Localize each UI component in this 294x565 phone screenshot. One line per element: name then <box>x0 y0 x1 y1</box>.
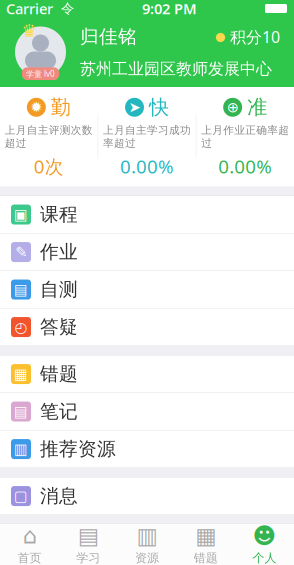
staticText: ▢ <box>14 488 28 504</box>
staticText: 积分10 <box>225 26 280 47</box>
staticText: 资源 <box>135 551 159 565</box>
staticText: 令 <box>61 0 74 17</box>
button[interactable]: ▤ <box>0 271 294 309</box>
staticText: 学习 <box>76 551 100 565</box>
staticText: 准 <box>247 95 267 120</box>
staticText: ▣ <box>14 206 28 223</box>
staticText: ☻ <box>253 523 277 548</box>
staticText: ✹ <box>30 99 42 116</box>
staticText: Carrier <box>6 0 53 18</box>
button[interactable]: ▥ <box>0 431 294 468</box>
staticText: 0.00% <box>218 154 272 179</box>
staticText: 上月自主评测次数超过 <box>5 124 93 150</box>
button[interactable]: ✎ <box>0 234 294 271</box>
staticText: ▤ <box>14 281 28 298</box>
staticText: 个人 <box>253 551 277 565</box>
button[interactable]: ◴ <box>0 309 294 346</box>
staticText: 推荐资源 <box>40 438 116 460</box>
button[interactable]: ▦ <box>0 356 294 393</box>
staticText: ▤ <box>78 523 99 548</box>
staticText: 学童 lv0 <box>26 68 55 79</box>
staticText: 自测 <box>40 278 78 301</box>
staticText: 错题 <box>40 363 78 385</box>
staticText: 课程 <box>40 203 78 226</box>
button[interactable]: ▤ <box>0 393 294 431</box>
staticText: ▤ <box>14 403 28 420</box>
button[interactable]: ▦ <box>176 524 235 564</box>
staticText: 勤 <box>51 95 71 120</box>
button[interactable]: ☻ <box>235 524 294 564</box>
staticText: ⌂ <box>22 523 36 548</box>
staticText: ♛ <box>21 21 37 41</box>
button[interactable]: ▤ <box>59 524 118 564</box>
staticText: ▥ <box>14 441 28 457</box>
staticText: 0.00% <box>120 154 174 179</box>
staticText: ➤ <box>128 99 140 116</box>
staticText: 归佳铭 <box>80 25 137 48</box>
staticText: ⊕ <box>227 99 239 116</box>
staticText: 笔记 <box>40 400 78 423</box>
button[interactable]: ▥ <box>118 524 176 564</box>
staticText: 苏州工业园区教师发展中心 <box>80 59 272 79</box>
staticText: 快 <box>149 95 169 120</box>
staticText: 错题 <box>194 551 218 565</box>
button[interactable]: ▢ <box>0 478 294 515</box>
staticText: ▦ <box>195 523 216 548</box>
staticText: ✎ <box>15 244 27 260</box>
staticText: ◴ <box>14 319 27 335</box>
staticText: 9:02 PM <box>142 0 197 18</box>
staticText: 答疑 <box>40 316 78 338</box>
staticText: 上月自主学习成功率超过 <box>103 124 191 150</box>
staticText: ▦ <box>14 366 28 382</box>
staticText: ▥ <box>136 523 157 548</box>
staticText: 上月作业正确率超过 <box>201 124 289 150</box>
button[interactable]: ⌂ <box>0 524 59 564</box>
staticText: 0次 <box>34 154 64 179</box>
staticText: ● <box>215 30 225 43</box>
staticText: 作业 <box>40 241 78 263</box>
staticText: 首页 <box>17 551 41 565</box>
button[interactable]: ▣ <box>0 196 294 234</box>
staticText: 消息 <box>40 485 78 507</box>
